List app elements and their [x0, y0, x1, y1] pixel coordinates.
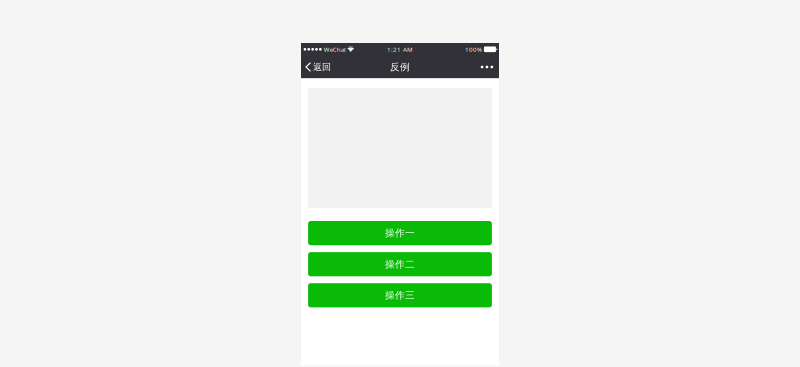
button[interactable]: 返回	[301, 56, 336, 78]
staticText: WeChat	[324, 45, 346, 53]
staticText: 返回	[313, 61, 331, 73]
button[interactable]: 操作三	[308, 283, 492, 307]
staticText: 操作三	[385, 289, 415, 301]
staticText: 1:21 AM	[387, 45, 413, 53]
staticText: 操作二	[385, 258, 415, 270]
button[interactable]: 操作二	[308, 252, 492, 276]
staticText: 操作一	[385, 227, 415, 239]
staticText: 反例	[390, 61, 410, 73]
staticText: 100%	[465, 45, 482, 53]
button[interactable]: 操作一	[308, 221, 492, 245]
button[interactable]: More options	[475, 56, 499, 78]
